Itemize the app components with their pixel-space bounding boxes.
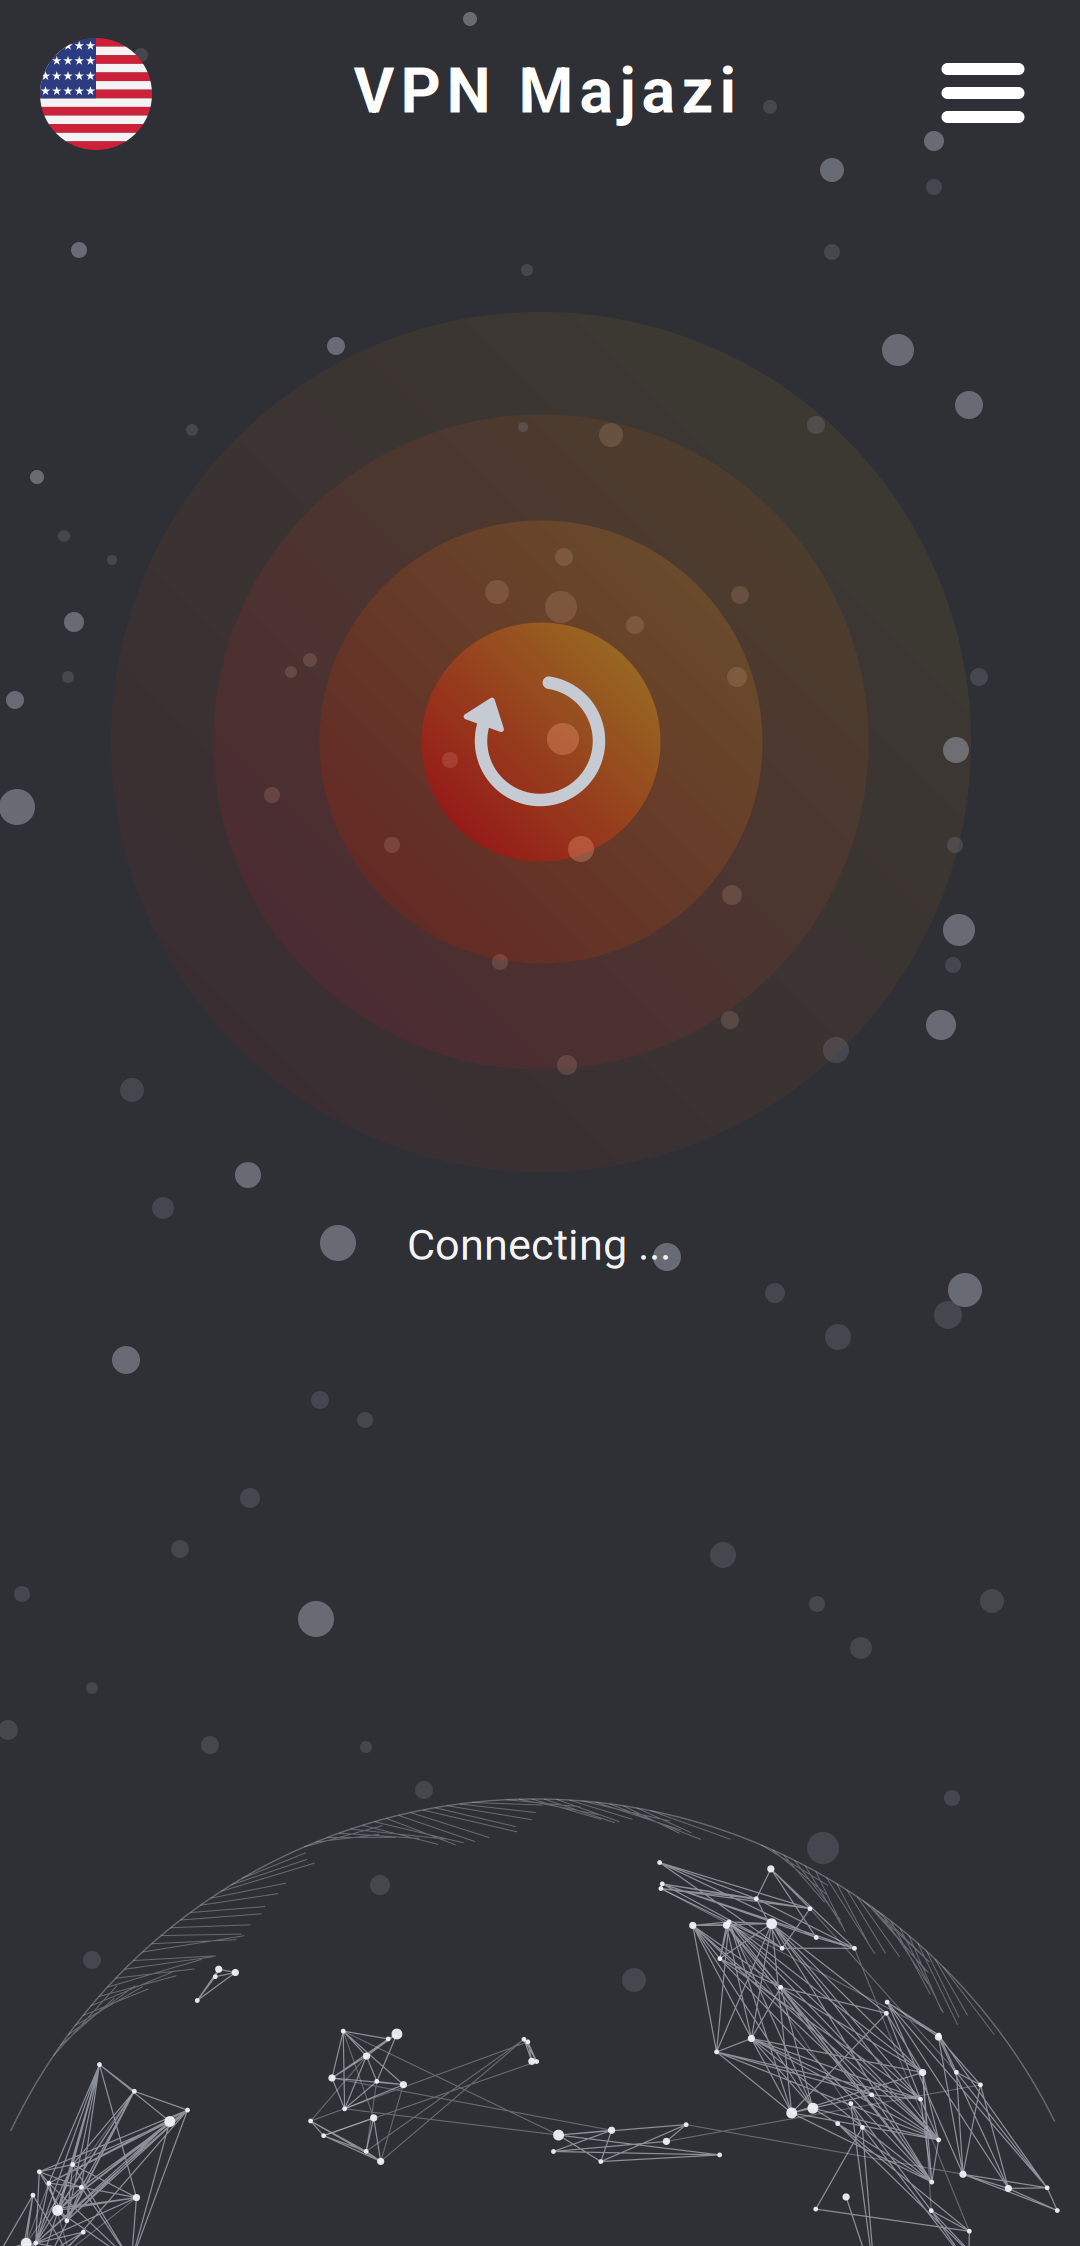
staticText: ★ (62, 84, 73, 98)
staticText: ★ (85, 53, 96, 68)
staticText: ★ (51, 53, 62, 68)
staticText: ★ (40, 84, 51, 98)
button[interactable]: Selected country: United States (40, 38, 152, 150)
staticText: Connecting ... (407, 1220, 671, 1270)
staticText: ★ (85, 84, 96, 98)
staticText: ★ (62, 53, 73, 68)
staticText: ★ (74, 38, 85, 53)
staticText: ★ (74, 69, 85, 83)
staticText: ★ (51, 38, 62, 53)
staticText: VPN Majazi (353, 54, 736, 128)
staticText: ★ (51, 84, 62, 98)
staticText: ★ (62, 69, 73, 83)
staticText: ★ (74, 53, 85, 68)
staticText: ★ (85, 38, 96, 53)
staticText: ★ (51, 69, 62, 83)
button[interactable]: Menu (923, 43, 1043, 143)
staticText: ★ (62, 38, 73, 53)
staticText: ★ (74, 84, 85, 98)
staticText: ★ (85, 69, 96, 83)
staticText: ★ (40, 53, 51, 68)
staticText: ★ (40, 69, 51, 83)
